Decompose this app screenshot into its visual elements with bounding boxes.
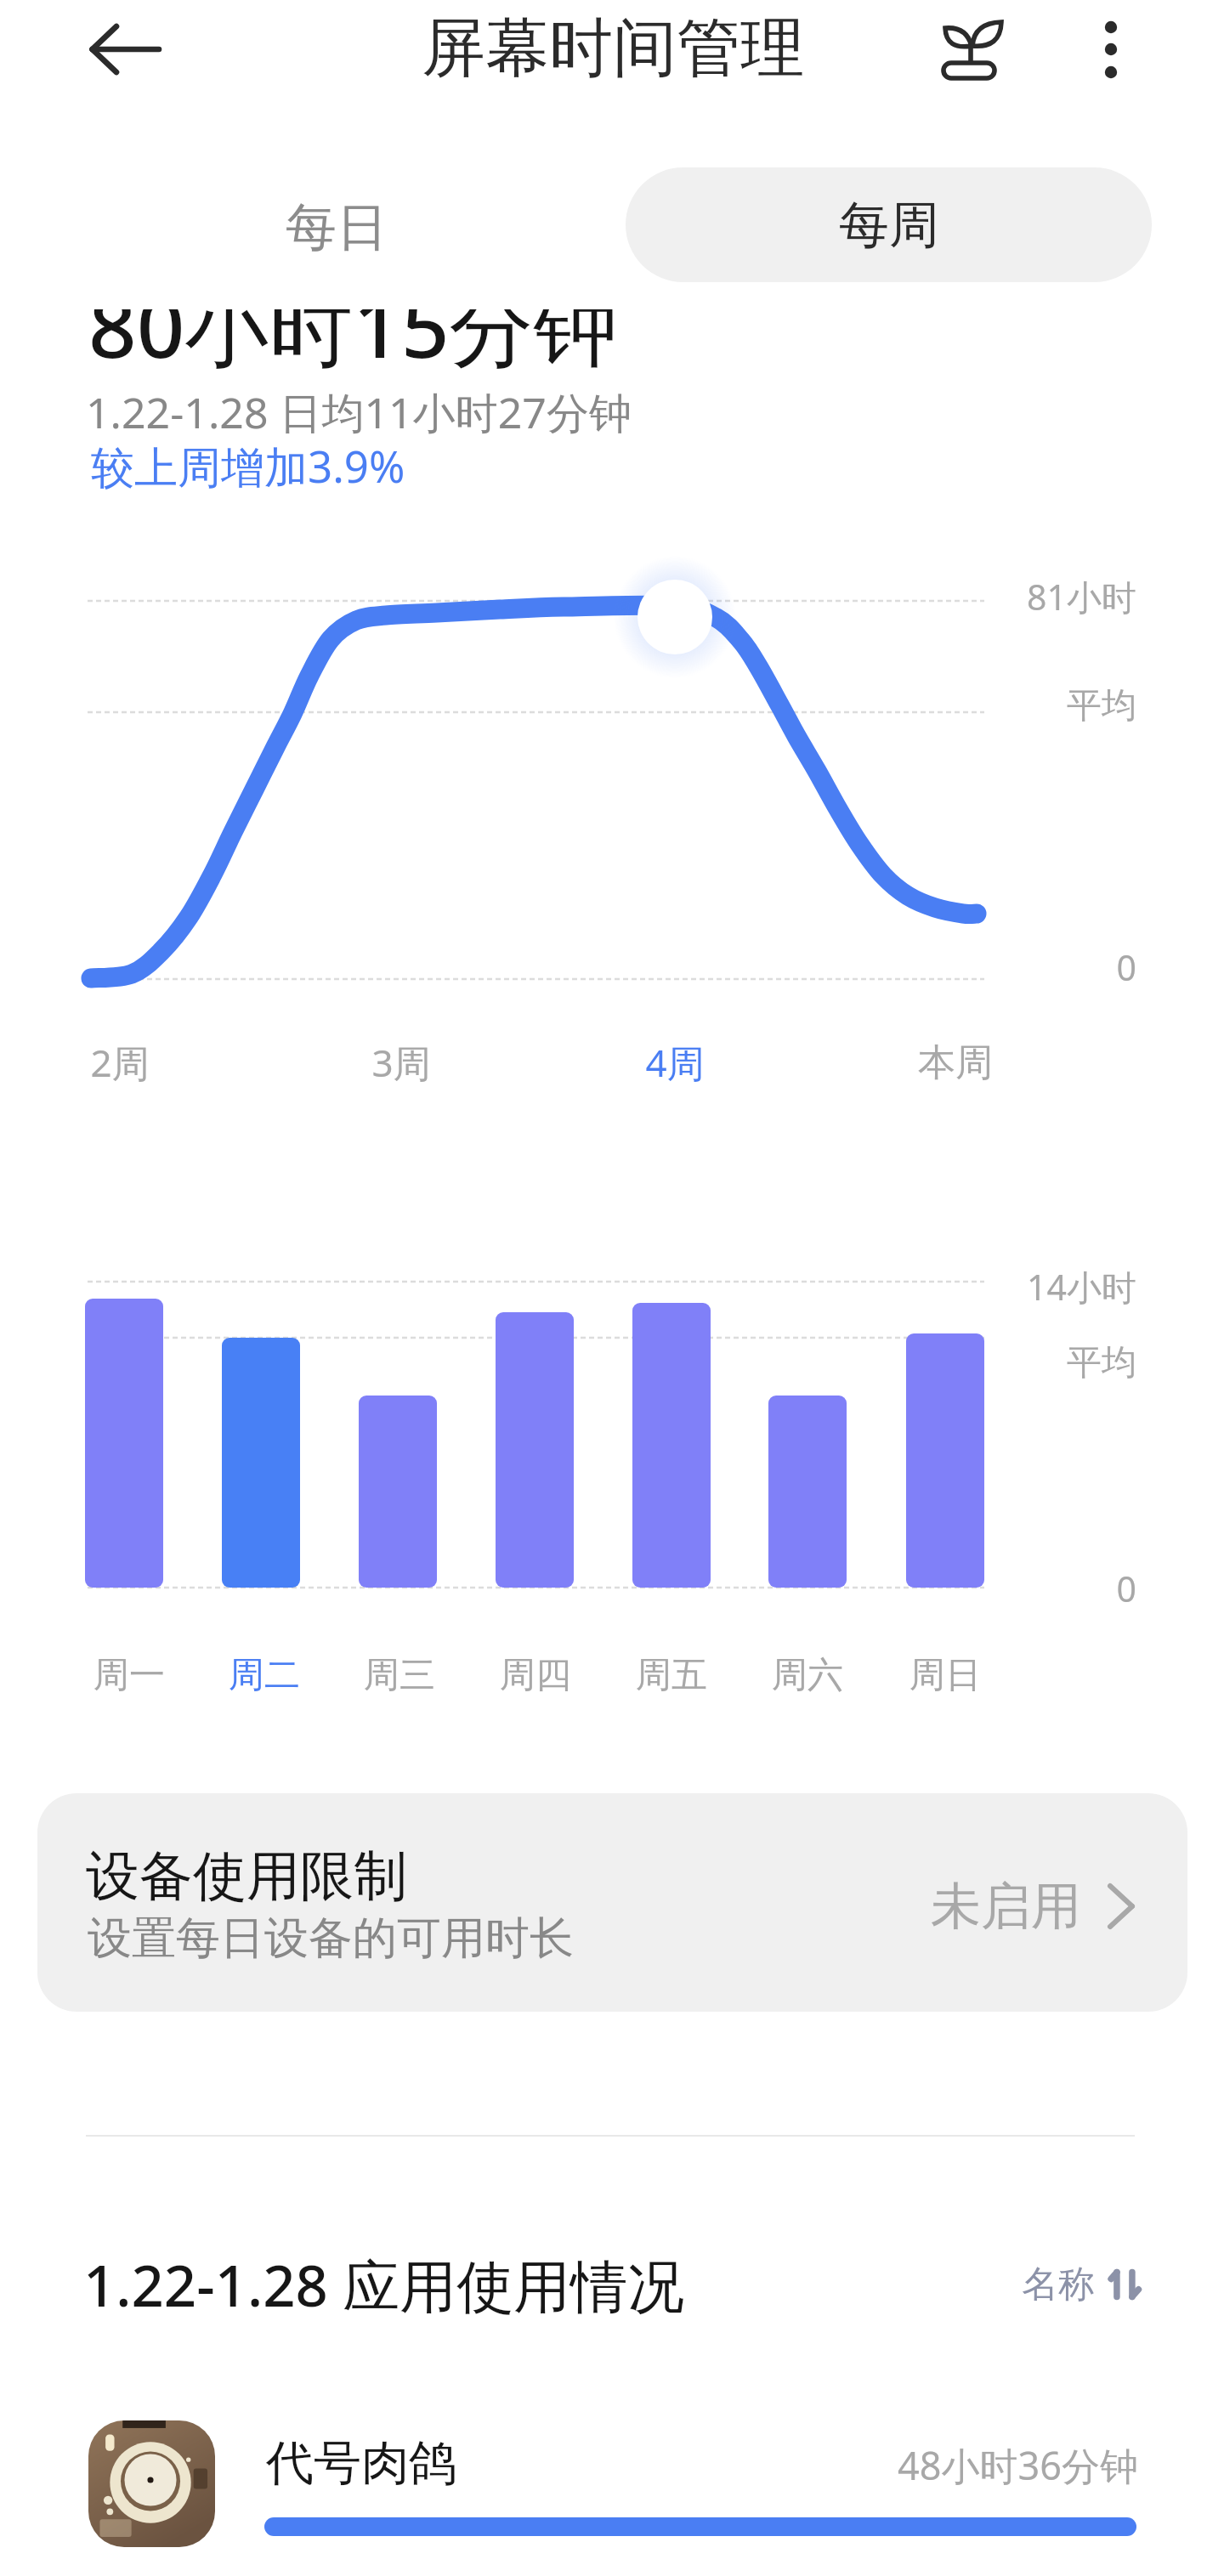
button[interactable]: 设备使用限制 bbox=[37, 1793, 1187, 2012]
button[interactable]: 周五 bbox=[595, 1641, 748, 1709]
staticText: 4周 bbox=[645, 1037, 705, 1088]
button[interactable]: 代号肉鸽 bbox=[0, 2397, 1224, 2576]
button[interactable]: Focus mode bbox=[938, 10, 1010, 82]
staticText: 名称 bbox=[1022, 2262, 1095, 2307]
staticText: 设置每日设备的可用时长 bbox=[88, 1911, 574, 1967]
staticText: 屏幕时间管理 bbox=[422, 8, 804, 88]
staticText: 每日 bbox=[286, 195, 388, 260]
staticText: 0 bbox=[1116, 943, 1136, 991]
staticText: 未启用 bbox=[931, 1875, 1081, 1938]
staticText: 设备使用限制 bbox=[86, 1843, 407, 1910]
staticText: 14小时 bbox=[1027, 1263, 1136, 1311]
staticText: 代号肉鸽 bbox=[266, 2433, 456, 2494]
staticText: 81小时 bbox=[1027, 573, 1136, 620]
staticText: 周日 bbox=[909, 1653, 981, 1698]
button[interactable]: 本周 bbox=[879, 1027, 1032, 1098]
button[interactable]: 周三 bbox=[323, 1641, 476, 1709]
staticText: 周五 bbox=[636, 1653, 707, 1698]
button[interactable]: 4周 bbox=[598, 1027, 751, 1098]
staticText: 周六 bbox=[772, 1653, 843, 1698]
button[interactable]: 每日 bbox=[77, 170, 596, 285]
staticText: 周四 bbox=[500, 1653, 571, 1698]
staticText: 80小时15分钟 bbox=[88, 268, 618, 382]
staticText: 平均 bbox=[1067, 1341, 1136, 1385]
button[interactable]: 周日 bbox=[869, 1641, 1022, 1709]
button[interactable]: 周二 bbox=[188, 1641, 341, 1709]
staticText: 较上周增加3.9% bbox=[91, 436, 405, 495]
staticText: 每周 bbox=[839, 194, 939, 257]
staticText: 0 bbox=[1116, 1565, 1136, 1612]
button[interactable]: 周六 bbox=[731, 1641, 884, 1709]
staticText: 平均 bbox=[1067, 684, 1136, 728]
button[interactable]: Back bbox=[66, 0, 185, 119]
button[interactable]: More options bbox=[1075, 0, 1177, 102]
button[interactable]: 周四 bbox=[459, 1641, 612, 1709]
button[interactable]: 2周 bbox=[43, 1027, 196, 1098]
button[interactable]: 名称 bbox=[1022, 2252, 1141, 2317]
staticText: 周二 bbox=[229, 1653, 300, 1698]
staticText: 48小时36分钟 bbox=[898, 2439, 1138, 2491]
staticText: 1.22-1.28 应用使用情况 bbox=[83, 2245, 685, 2324]
button[interactable]: 每周 bbox=[626, 167, 1152, 282]
staticText: 周一 bbox=[93, 1653, 165, 1698]
staticText: 周三 bbox=[364, 1653, 435, 1698]
staticText: 本周 bbox=[918, 1039, 993, 1086]
button[interactable]: 3周 bbox=[325, 1027, 478, 1098]
button[interactable]: 周一 bbox=[53, 1641, 206, 1709]
staticText: 1.22-1.28 日均11小时27分钟 bbox=[86, 383, 632, 441]
staticText: 3周 bbox=[371, 1037, 431, 1088]
staticText: 2周 bbox=[90, 1037, 150, 1088]
